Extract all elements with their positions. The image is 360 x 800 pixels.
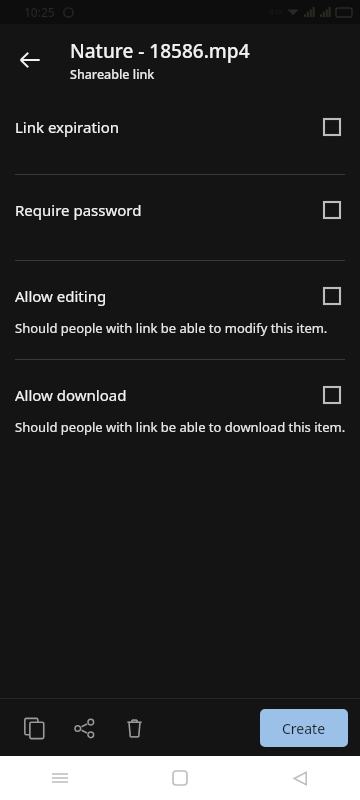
- staticText: 10:25: [24, 4, 55, 20]
- staticText: Should people with link be able to modif…: [15, 319, 328, 337]
- button[interactable]: Allow editing: [0, 261, 360, 359]
- button[interactable]: Back: [240, 756, 360, 800]
- button[interactable]: Allow editing: [319, 283, 345, 309]
- button[interactable]: Share: [62, 706, 106, 750]
- button[interactable]: Recent apps: [0, 756, 120, 800]
- staticText: Allow editing: [15, 286, 319, 306]
- button[interactable]: Home: [120, 756, 240, 800]
- button[interactable]: Allow download: [319, 382, 345, 408]
- staticText: Shareable link: [70, 66, 155, 83]
- staticText: 0.12: [270, 8, 282, 16]
- button[interactable]: Copy link: [12, 706, 56, 750]
- button[interactable]: Link expiration: [319, 114, 345, 140]
- staticText: Create: [282, 719, 326, 738]
- staticText: Link expiration: [15, 117, 319, 137]
- button[interactable]: Link expiration: [0, 96, 360, 174]
- staticText: Nature - 18586.mp4: [70, 38, 250, 64]
- button[interactable]: Delete: [112, 706, 156, 750]
- button[interactable]: Back: [6, 36, 54, 84]
- staticText: Allow download: [15, 385, 319, 405]
- button[interactable]: Create: [260, 709, 348, 747]
- button[interactable]: Allow download: [0, 360, 360, 458]
- staticText: Should people with link be able to downl…: [15, 418, 345, 436]
- staticText: Require password: [15, 200, 319, 220]
- button[interactable]: Require password: [0, 175, 360, 260]
- button[interactable]: Require password: [319, 197, 345, 223]
